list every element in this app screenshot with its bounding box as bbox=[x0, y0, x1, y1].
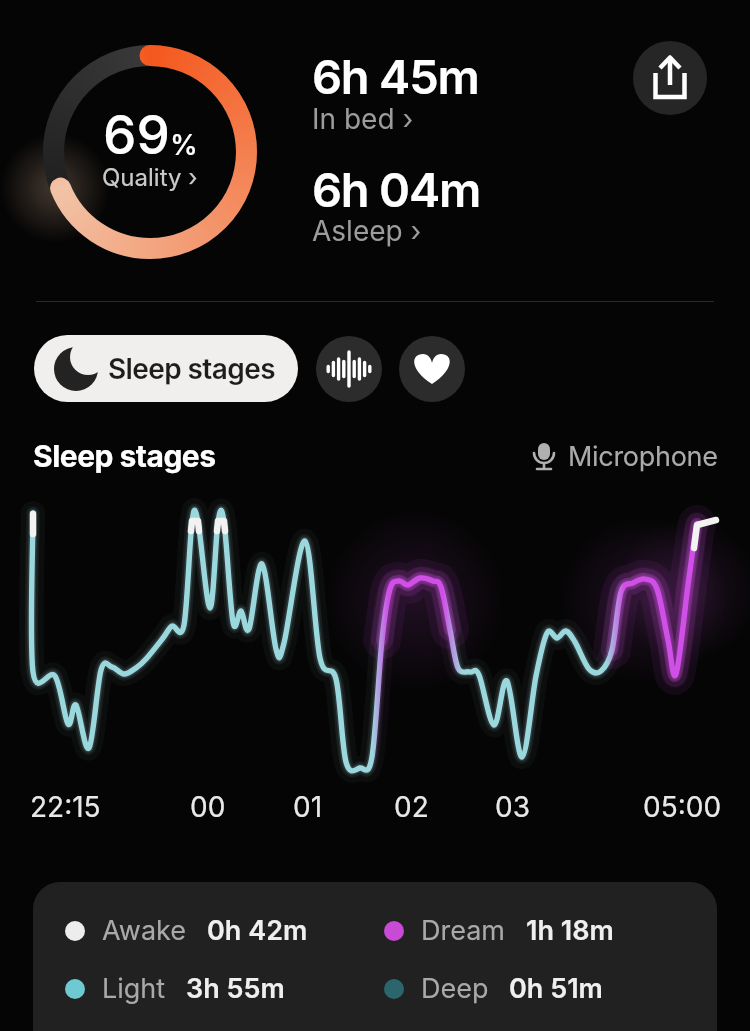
button[interactable]: Asleep › bbox=[312, 214, 422, 248]
staticText: Deep bbox=[421, 972, 489, 1005]
button[interactable]: Microphone bbox=[532, 440, 718, 473]
button[interactable] bbox=[633, 41, 707, 115]
button[interactable] bbox=[399, 336, 465, 402]
button[interactable]: Awake bbox=[65, 914, 308, 947]
staticText: 1h 18m bbox=[526, 914, 614, 947]
staticText: Light bbox=[102, 972, 166, 1005]
button[interactable]: 69 bbox=[43, 45, 257, 259]
staticText: 03 bbox=[495, 790, 530, 824]
button[interactable]: 6h 04m bbox=[312, 161, 481, 218]
staticText: 01 bbox=[293, 790, 323, 824]
staticText: 22:15 bbox=[30, 790, 101, 824]
button[interactable]: Dream bbox=[384, 914, 614, 947]
staticText: 00 bbox=[190, 790, 226, 824]
button[interactable]: Deep bbox=[384, 972, 603, 1005]
staticText: Sleep stages bbox=[108, 352, 275, 386]
staticText: 69 bbox=[103, 103, 170, 167]
staticText: 05:00 bbox=[643, 790, 722, 824]
button[interactable]: Light bbox=[65, 972, 285, 1005]
button[interactable] bbox=[316, 336, 382, 402]
staticText: Quality › bbox=[102, 163, 198, 192]
staticText: Dream bbox=[421, 914, 506, 947]
staticText: 02 bbox=[394, 790, 429, 824]
staticText: Sleep stages bbox=[33, 438, 216, 474]
button[interactable]: Sleep stages bbox=[34, 335, 298, 402]
button[interactable]: In bed › bbox=[312, 102, 414, 136]
button[interactable]: Awake bbox=[33, 882, 717, 1031]
staticText: % bbox=[170, 128, 198, 162]
button[interactable]: 6h 45m bbox=[312, 48, 479, 105]
staticText: 0h 51m bbox=[509, 972, 603, 1005]
staticText: Microphone bbox=[568, 440, 718, 473]
staticText: 0h 42m bbox=[207, 914, 308, 947]
staticText: Awake bbox=[102, 914, 187, 947]
staticText: 3h 55m bbox=[186, 972, 285, 1005]
